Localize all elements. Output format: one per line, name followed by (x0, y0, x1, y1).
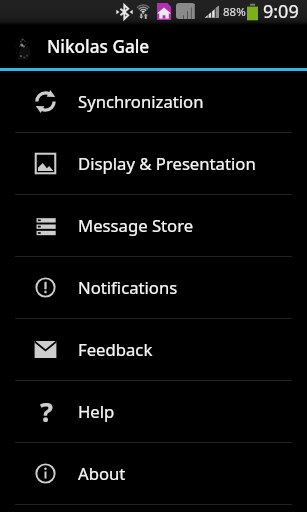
button[interactable]: Display & Presentation (0, 133, 307, 194)
staticText: About (78, 462, 126, 485)
button[interactable]: Notifications (0, 257, 307, 318)
staticText: Message Store (78, 214, 194, 237)
button[interactable]: Message Store (0, 195, 307, 256)
button[interactable]: About (0, 443, 307, 504)
staticText: ? (40, 393, 53, 430)
staticText: Display & Presentation (78, 152, 256, 175)
staticText: Notifications (78, 276, 178, 299)
staticText: Feedback (78, 338, 153, 361)
staticText: Synchronization (78, 90, 204, 113)
staticText: 9:09 (263, 0, 299, 24)
button[interactable]: Feedback (0, 319, 307, 380)
button[interactable]: ? (0, 381, 307, 442)
staticText: Nikolas Gale (47, 35, 150, 58)
staticText: Help (78, 400, 115, 423)
button[interactable]: Nikolas Gale (0, 25, 307, 68)
staticText: 88% (223, 4, 246, 20)
button[interactable]: Synchronization (0, 71, 307, 132)
